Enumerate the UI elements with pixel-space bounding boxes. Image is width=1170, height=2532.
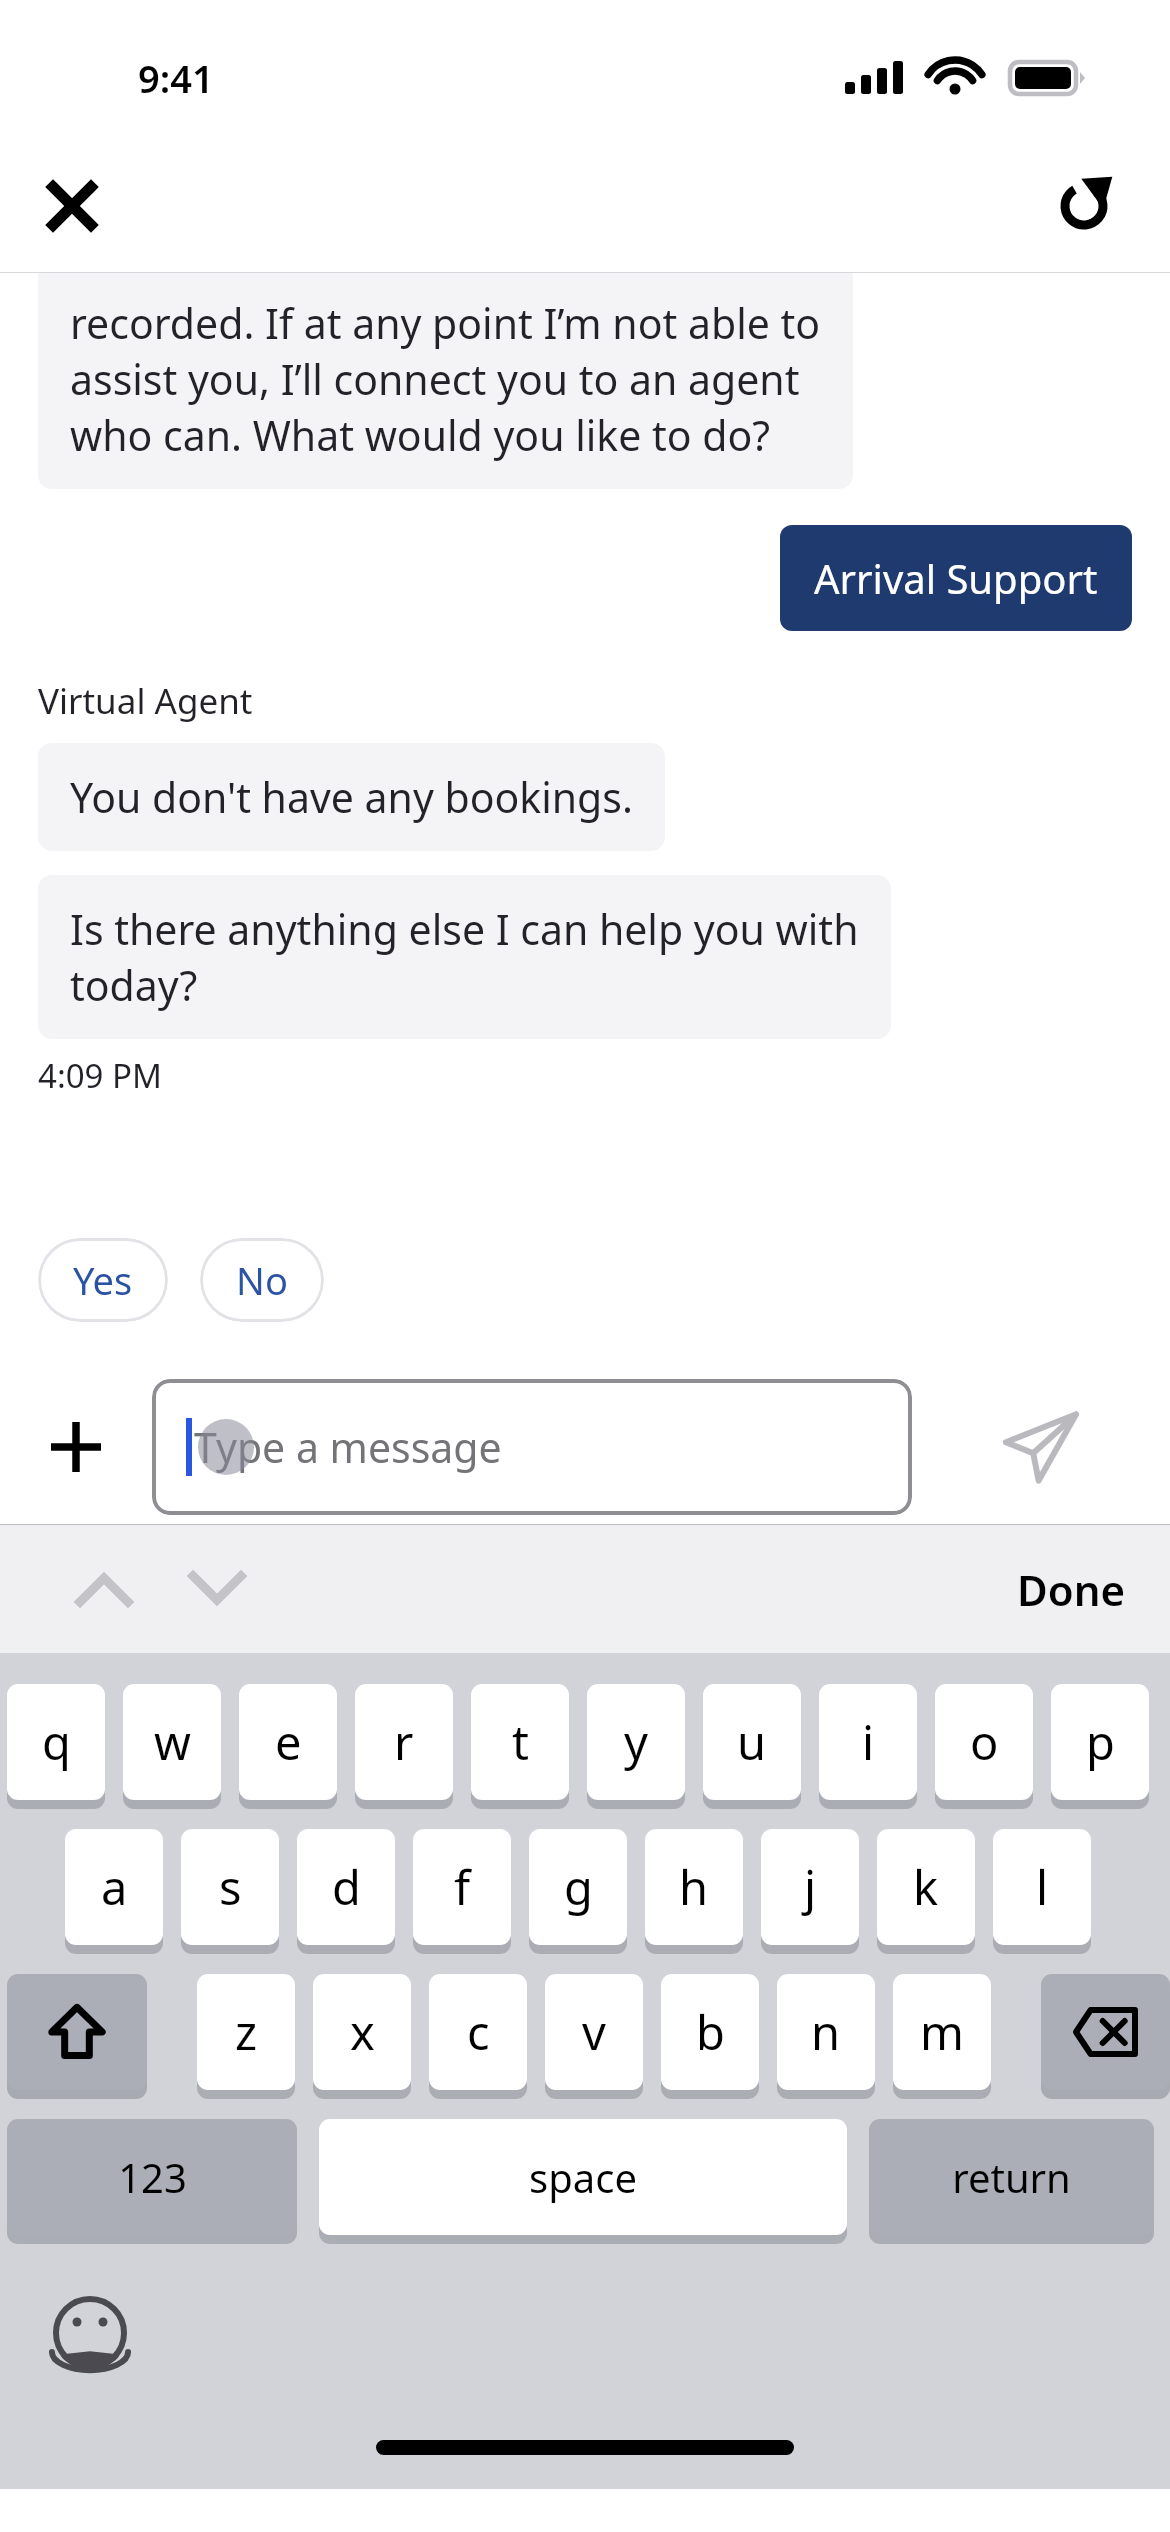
button[interactable]: k [877,1829,975,1945]
staticText: 123 [118,2150,187,2204]
staticText: Yes [73,1254,133,1306]
staticText: Arrival Support [814,551,1098,605]
button[interactable]: Arrival Support [780,525,1132,631]
button[interactable]: s [181,1829,279,1945]
button[interactable]: Shift [7,1974,147,2090]
staticText: a [101,1855,128,1919]
staticText: e [275,1710,302,1774]
button[interactable]: f [413,1829,511,1945]
staticText: i [862,1710,875,1774]
staticText: Done [1017,1561,1126,1618]
staticText: d [332,1855,361,1919]
button[interactable]: p [1051,1684,1149,1800]
staticText: h [679,1855,709,1919]
button[interactable]: x [313,1974,411,2090]
staticText: v [582,2000,606,2064]
staticText: n [811,2000,841,2064]
button[interactable]: w [123,1684,221,1800]
button[interactable]: 123 [7,2119,297,2235]
button[interactable]: g [529,1829,627,1945]
staticText: t [512,1710,529,1774]
button[interactable]: space [319,2119,847,2235]
button[interactable]: Send [912,1370,1170,1524]
button[interactable]: No [200,1238,324,1322]
staticText: Is there anything else I can help you wi… [70,901,859,957]
staticText: k [913,1855,939,1919]
button[interactable]: o [935,1684,1033,1800]
button[interactable]: i [819,1684,917,1800]
button[interactable]: Done [973,1525,1170,1653]
button[interactable]: c [429,1974,527,2090]
button[interactable]: h [645,1829,743,1945]
button[interactable]: b [661,1974,759,2090]
button[interactable]: m [893,1974,991,2090]
staticText: u [737,1710,767,1774]
staticText: m [920,2000,964,2064]
button[interactable]: q [7,1684,105,1800]
staticText: g [564,1855,593,1919]
staticText: return [952,2150,1071,2204]
button[interactable]: Refresh [1034,156,1134,256]
staticText: recorded. If at any point I’m not able t… [70,295,821,351]
staticText: x [350,2000,375,2064]
button[interactable]: Emoji [0,2273,180,2393]
button[interactable]: e [239,1684,337,1800]
staticText: c [467,2000,490,2064]
staticText: z [235,2000,258,2064]
button[interactable]: Add attachment [0,1370,152,1524]
button[interactable]: return [869,2119,1154,2235]
button[interactable]: Yes [38,1238,168,1322]
button[interactable]: Next field [152,1525,282,1653]
staticText: 9:41 [138,52,214,104]
staticText: y [624,1710,648,1774]
button[interactable]: Backspace [1041,1974,1170,2090]
button[interactable]: Previous field [34,1525,174,1653]
staticText: q [42,1710,71,1774]
button[interactable]: j [761,1829,859,1945]
button[interactable]: v [545,1974,643,2090]
staticText: b [696,2000,725,2064]
button[interactable]: t [471,1684,569,1800]
staticText: Type a message [194,1419,502,1475]
button[interactable]: z [197,1974,295,2090]
button[interactable]: n [777,1974,875,2090]
staticText: j [804,1855,817,1919]
staticText: o [970,1710,999,1774]
button[interactable]: a [65,1829,163,1945]
button[interactable]: Type a message [152,1379,912,1515]
staticText: p [1086,1710,1115,1774]
button[interactable]: d [297,1829,395,1945]
staticText: today? [70,957,198,1013]
staticText: r [394,1710,414,1774]
staticText: No [236,1254,288,1306]
button[interactable]: Close [22,156,122,256]
button[interactable]: y [587,1684,685,1800]
staticText: who can. What would you like to do? [70,407,771,463]
staticText: l [1036,1855,1049,1919]
staticText: f [454,1855,471,1919]
staticText: space [529,2150,637,2204]
staticText: 4:09 PM [38,1053,162,1098]
button[interactable]: u [703,1684,801,1800]
staticText: assist you, I’ll connect you to an agent [70,351,800,407]
staticText: Virtual Agent [38,677,253,725]
button[interactable]: l [993,1829,1091,1945]
staticText: w [154,1710,191,1774]
staticText: s [219,1855,242,1919]
staticText: You don't have any bookings. [70,769,633,825]
button[interactable]: r [355,1684,453,1800]
